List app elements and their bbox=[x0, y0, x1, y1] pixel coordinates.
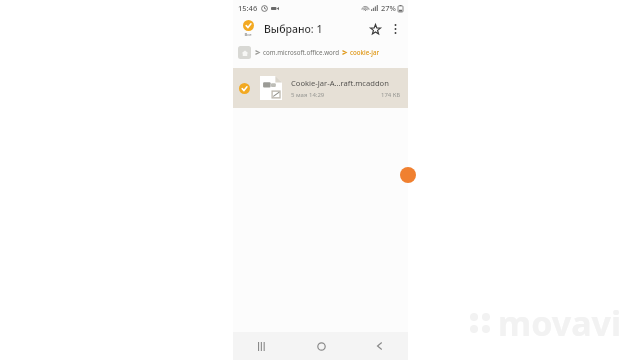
staticText: cookie-jar bbox=[350, 48, 380, 56]
staticText: Все bbox=[244, 32, 252, 38]
button[interactable]: Add to favourites bbox=[365, 19, 385, 39]
staticText: movavi bbox=[498, 300, 622, 346]
staticText: Выбрано: 1 bbox=[264, 22, 365, 36]
button[interactable]: Cookie-Jar-A...raft.mcaddon bbox=[233, 68, 408, 108]
staticText: 5 мая 14:29 bbox=[291, 91, 325, 99]
button[interactable]: Back bbox=[350, 332, 408, 360]
button[interactable]: Home folder bbox=[238, 46, 251, 59]
button[interactable]: Home bbox=[292, 332, 350, 360]
staticText: com.microsoft.office.word bbox=[263, 48, 339, 56]
button[interactable]: Все bbox=[237, 19, 259, 38]
staticText: Cookie-Jar-A...raft.mcaddon bbox=[291, 78, 389, 88]
button[interactable]: Recent apps bbox=[233, 332, 292, 360]
button[interactable]: More options bbox=[386, 20, 404, 38]
button[interactable]: Action bbox=[400, 167, 416, 183]
staticText: 174 КБ bbox=[381, 91, 401, 99]
staticText: 15:46 bbox=[238, 3, 258, 13]
staticText: 27% bbox=[381, 3, 396, 13]
